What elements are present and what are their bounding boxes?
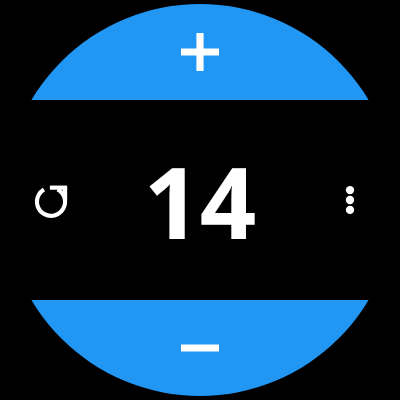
staticText: 14	[144, 134, 257, 267]
button[interactable]: Decrease	[0, 0, 400, 400]
button[interactable]: More options	[322, 172, 378, 228]
button[interactable]: Increase	[0, 0, 400, 400]
button[interactable]: Reset	[22, 171, 80, 229]
